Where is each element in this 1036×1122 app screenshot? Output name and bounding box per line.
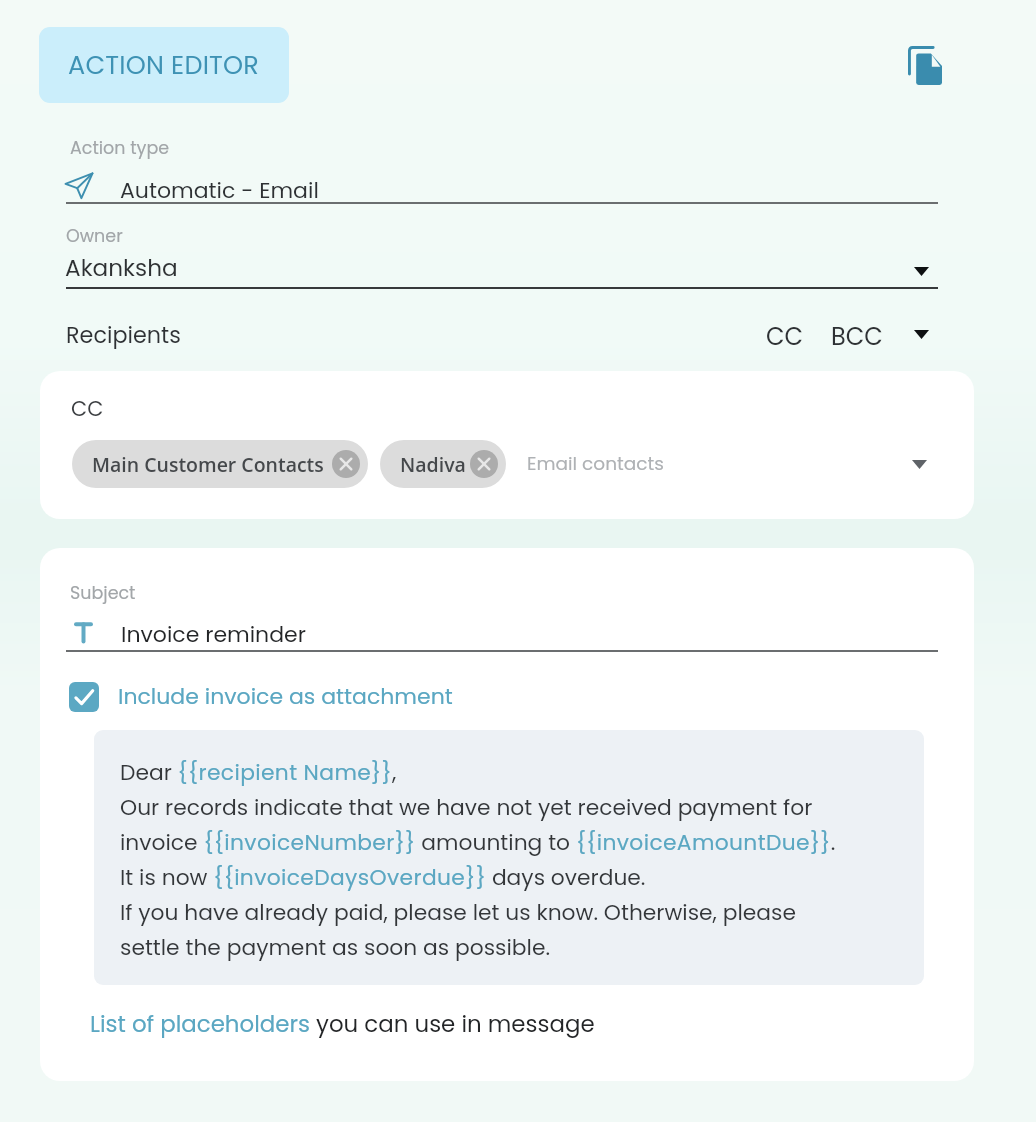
button[interactable]: Show contact suggestions <box>897 442 941 486</box>
button[interactable]: List of placeholders you can use in mess… <box>86 1002 598 1042</box>
staticText: Automatic - Email <box>120 175 319 206</box>
button[interactable] <box>66 575 938 650</box>
staticText: ACTION EDITOR <box>68 47 260 83</box>
staticText: Dear {{recipient Name}}, Our records ind… <box>120 757 910 963</box>
button[interactable] <box>66 218 938 289</box>
staticText: Nadiva <box>400 451 466 478</box>
button[interactable]: Nadiva <box>380 440 506 488</box>
staticText: CC <box>766 320 804 354</box>
button[interactable]: BCC <box>821 310 893 364</box>
button[interactable]: More recipient options <box>899 310 943 350</box>
button[interactable]: ACTION EDITOR <box>39 27 289 103</box>
staticText: Action type <box>70 136 170 161</box>
button[interactable]: Include invoice as attachment <box>64 676 458 717</box>
staticText: CC <box>71 394 104 423</box>
button[interactable] <box>66 130 938 204</box>
staticText: Invoice reminder <box>121 619 306 650</box>
staticText: Main Customer Contacts <box>92 451 324 478</box>
button[interactable]: Select owner <box>899 246 943 286</box>
staticText: Subject <box>70 581 136 606</box>
staticText: Akanksha <box>65 252 178 284</box>
staticText: List of placeholders you can use in mess… <box>90 1008 595 1040</box>
staticText: Recipients <box>66 320 181 351</box>
staticText: BCC <box>831 320 883 354</box>
staticText: Email contacts <box>527 451 664 477</box>
staticText: Owner <box>66 224 123 249</box>
button[interactable]: Duplicate <box>890 30 960 100</box>
button[interactable]: Main Customer Contacts <box>72 440 368 488</box>
button[interactable]: CC <box>756 310 814 364</box>
staticText: Include invoice as attachment <box>118 681 453 712</box>
